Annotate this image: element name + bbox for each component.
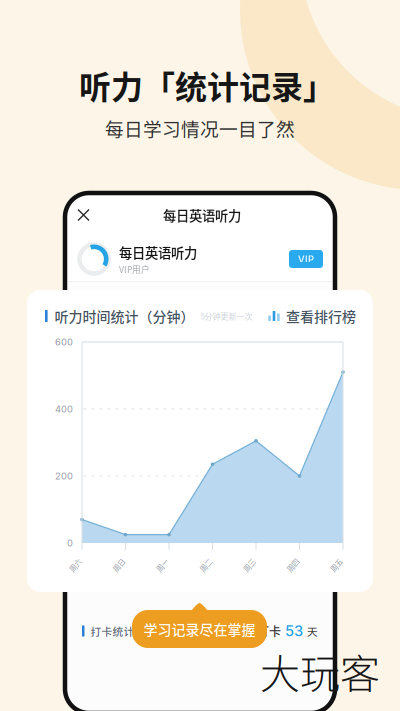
staticText: 天	[307, 623, 318, 639]
staticText: 400	[55, 403, 73, 415]
staticText: VIP用户	[119, 263, 150, 275]
button[interactable]: 每日英语听力	[65, 237, 335, 281]
staticText: 200	[55, 470, 73, 482]
staticText: 周三	[242, 560, 256, 570]
staticText: 周日	[111, 560, 125, 570]
staticText: 周六	[68, 560, 82, 570]
staticText: 周五	[329, 560, 343, 570]
staticText: 600	[55, 336, 73, 348]
staticText: 打卡	[257, 622, 281, 640]
staticText: 周一	[155, 560, 169, 570]
staticText: 查看排行榜	[286, 306, 356, 326]
staticText: 打卡统计	[90, 623, 134, 639]
staticText: 每日英语听力	[163, 205, 241, 225]
staticText: 学习记录尽在掌握	[143, 619, 255, 639]
staticText: 每日英语听力	[119, 243, 197, 262]
staticText: VIP	[298, 253, 314, 265]
staticText: 听力时间统计（分钟）	[55, 306, 195, 326]
staticText: 周二	[198, 560, 212, 570]
staticText: 每日学习情况一目了然	[105, 114, 295, 141]
staticText: 5分钟更新一次	[201, 310, 253, 322]
staticText: 53	[281, 622, 307, 640]
button[interactable]: 关闭	[69, 200, 98, 229]
staticText: 周四	[285, 560, 299, 570]
staticText: 0	[67, 537, 73, 549]
staticText: 大玩客	[260, 642, 380, 700]
staticText: 听力「统计记录」	[79, 62, 335, 108]
button[interactable]: 查看排行榜	[268, 306, 356, 326]
